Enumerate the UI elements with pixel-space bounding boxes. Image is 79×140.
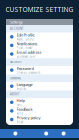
button[interactable]: Feedback [6, 107, 73, 115]
staticText: you@mail.com [16, 55, 34, 58]
staticText: ABOUT [10, 92, 19, 96]
button[interactable]: Language [6, 82, 73, 90]
staticText: Push, email [16, 46, 32, 50]
staticText: Password [16, 66, 33, 71]
staticText: GENERAL [10, 76, 21, 80]
staticText: Send [16, 112, 23, 115]
button[interactable]: Email address [6, 50, 73, 58]
staticText: Read [16, 120, 23, 124]
staticText: FAQ [16, 103, 21, 107]
staticText: Language [16, 82, 32, 87]
staticText: English [16, 87, 26, 91]
staticText: Name, photo [16, 38, 34, 41]
staticText: Edit Profile [16, 32, 34, 38]
button[interactable]: Password [6, 66, 73, 74]
staticText: ACCOUNT [10, 27, 23, 30]
button[interactable]: Privacy policy [6, 115, 73, 124]
staticText: Notifications [16, 41, 37, 46]
staticText: CUSTOMIZE SETTING [5, 5, 73, 14]
staticText: SECURITY [10, 60, 22, 64]
button[interactable]: Help [6, 98, 73, 107]
staticText: Settings [10, 19, 23, 25]
staticText: Privacy policy [16, 115, 40, 120]
button[interactable]: Notifications [6, 41, 73, 50]
staticText: Email address [16, 50, 41, 55]
staticText: Help [16, 98, 24, 103]
button[interactable]: Edit Profile [6, 32, 73, 41]
staticText: Change password [16, 71, 40, 74]
staticText: Feedback [16, 106, 32, 112]
